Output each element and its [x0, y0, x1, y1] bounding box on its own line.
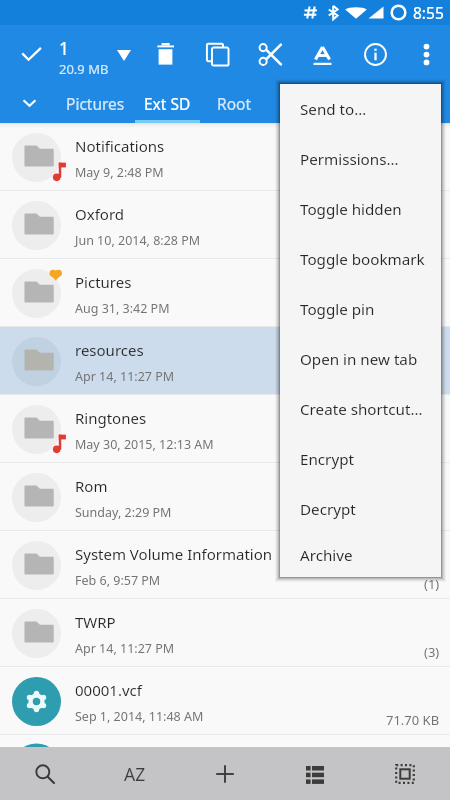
staticText: Jun 10, 2014, 8:28 PM	[75, 232, 201, 249]
staticText: Encrypt	[300, 449, 354, 470]
staticText: Send to…	[300, 99, 367, 120]
staticText: Ringtones	[75, 408, 147, 428]
staticText: Open in new tab	[300, 349, 418, 370]
staticText: Root	[217, 93, 251, 114]
button[interactable]: Archive	[280, 534, 441, 577]
button[interactable]: Toggle pin	[280, 284, 441, 334]
button[interactable]: More options	[404, 32, 448, 76]
staticText: Create shortcut…	[300, 399, 423, 420]
button[interactable]: Info	[353, 32, 397, 76]
staticText: 20.9 MB	[59, 60, 109, 78]
button[interactable]: Copy	[195, 32, 239, 76]
staticText: TWRP	[75, 612, 116, 632]
button[interactable]: resources	[0, 327, 450, 395]
button[interactable]: Create shortcut…	[280, 384, 441, 434]
button[interactable]: Toggle bookmark	[280, 234, 441, 284]
staticText: May 30, 2015, 12:13 AM	[75, 436, 214, 453]
button[interactable]: Oxford	[0, 191, 450, 259]
staticText: (1)	[424, 575, 440, 593]
button[interactable]: Selected	[9, 32, 53, 76]
staticText: Ext SD	[144, 93, 191, 114]
button[interactable]: Select all	[360, 747, 450, 800]
button[interactable]: Pictures	[62, 83, 128, 123]
staticText: Feb 6, 9:57 PM	[75, 572, 161, 589]
staticText: Sunday, 2:29 PM	[75, 504, 172, 521]
staticText: resources	[75, 340, 144, 360]
button[interactable]: Rename	[300, 32, 344, 76]
staticText: System Volume Information	[75, 544, 273, 564]
staticText: Apr 14, 11:27 PM	[75, 640, 175, 657]
staticText: 00001.vcf	[75, 680, 142, 700]
staticText: Pictures	[66, 93, 125, 114]
staticText: Pictures	[75, 272, 132, 292]
staticText: Rom	[75, 476, 108, 496]
button[interactable]: Toggle hidden	[280, 184, 441, 234]
button[interactable]: Encrypt	[280, 434, 441, 484]
staticText: 8:55	[413, 2, 444, 23]
button[interactable]: Pictures	[0, 259, 450, 327]
staticText: Aug 31, 3:42 PM	[75, 300, 170, 317]
button[interactable]: Ringtones	[0, 395, 450, 463]
button[interactable]: Ext SD	[136, 83, 198, 123]
button[interactable]: Root	[205, 83, 263, 123]
button[interactable]: Rom	[0, 463, 450, 531]
button[interactable]: List view	[270, 747, 360, 800]
button[interactable]: AZ	[90, 747, 180, 800]
button[interactable]: Open in new tab	[280, 334, 441, 384]
staticText: Oxford	[75, 204, 125, 224]
button[interactable]: Decrypt	[280, 484, 441, 534]
staticText: 1	[59, 36, 70, 60]
button[interactable]: 00001.vcf	[0, 667, 450, 735]
staticText: AZ	[124, 762, 146, 786]
button[interactable]: New	[180, 747, 270, 800]
staticText: May 9, 2:48 PM	[75, 164, 164, 181]
staticText: Archive	[300, 545, 353, 566]
staticText: Sep 1, 2014, 11:48 AM	[75, 708, 204, 725]
button[interactable]: Cut	[248, 32, 292, 76]
button[interactable]: Send to…	[280, 84, 441, 134]
button[interactable]: Search	[0, 747, 90, 800]
button[interactable]: Notifications	[0, 123, 450, 191]
staticText: Toggle hidden	[300, 199, 402, 220]
staticText: 71.70 KB	[386, 711, 440, 729]
button[interactable]: System Volume Information	[0, 531, 450, 599]
button[interactable]: 1	[59, 36, 109, 78]
staticText: Apr 14, 11:27 PM	[75, 368, 175, 385]
button[interactable]: Delete	[143, 32, 187, 76]
button[interactable]: Permissions…	[280, 134, 441, 184]
button[interactable]: Show drawer	[0, 83, 58, 123]
staticText: Permissions…	[300, 149, 399, 170]
button[interactable]: More selection options	[107, 38, 141, 72]
staticText: Notifications	[75, 136, 165, 156]
staticText: Decrypt	[300, 499, 356, 520]
staticText: Toggle bookmark	[300, 249, 425, 270]
staticText: (3)	[424, 643, 440, 661]
button[interactable]: TWRP	[0, 599, 450, 667]
staticText: Toggle pin	[300, 299, 375, 320]
